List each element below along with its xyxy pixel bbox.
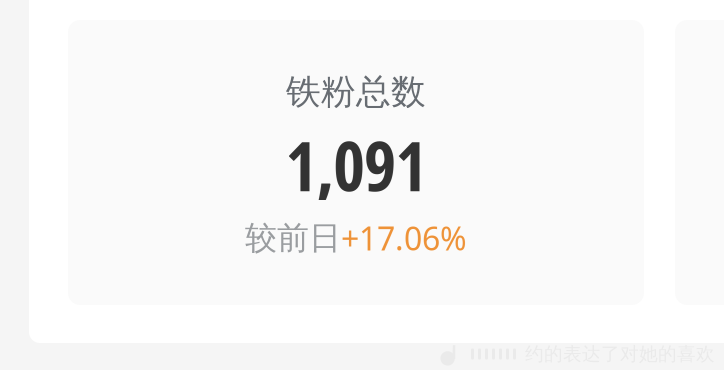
staticText: 较前日 [245, 218, 341, 258]
staticText: 铁粉总数 [286, 70, 426, 114]
staticText: 约的表达了对她的喜欢 [525, 342, 715, 366]
button[interactable]: 铁粉总数 [68, 20, 644, 305]
staticText: +17.06% [341, 216, 467, 260]
staticText: 1,091 [285, 119, 426, 211]
